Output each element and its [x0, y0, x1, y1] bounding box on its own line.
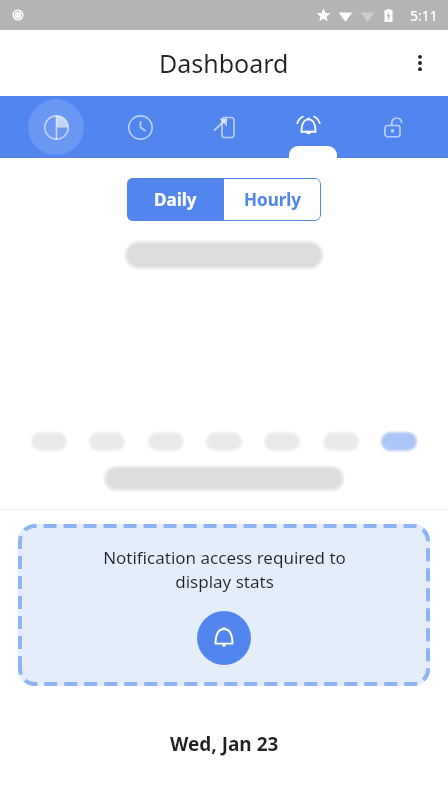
staticText: Notification access required to display … — [103, 546, 346, 593]
staticText: Dashboard — [159, 46, 289, 80]
button[interactable]: Daily — [127, 178, 224, 221]
button[interactable]: Clock — [112, 99, 168, 155]
staticText: Daily — [154, 188, 197, 211]
button[interactable]: More options — [398, 41, 442, 85]
button[interactable]: Pie chart — [28, 99, 84, 155]
button[interactable]: Grant notification access — [197, 611, 251, 665]
staticText: 5:11 — [410, 6, 438, 25]
button[interactable]: Hourly — [224, 178, 321, 221]
button[interactable]: Shared — [196, 99, 252, 155]
button[interactable]: Notifications — [280, 99, 336, 155]
button[interactable]: Unlocks — [364, 99, 420, 155]
staticText: Hourly — [244, 188, 302, 211]
staticText: Wed, Jan 23 — [170, 731, 279, 757]
button[interactable] — [18, 524, 430, 686]
